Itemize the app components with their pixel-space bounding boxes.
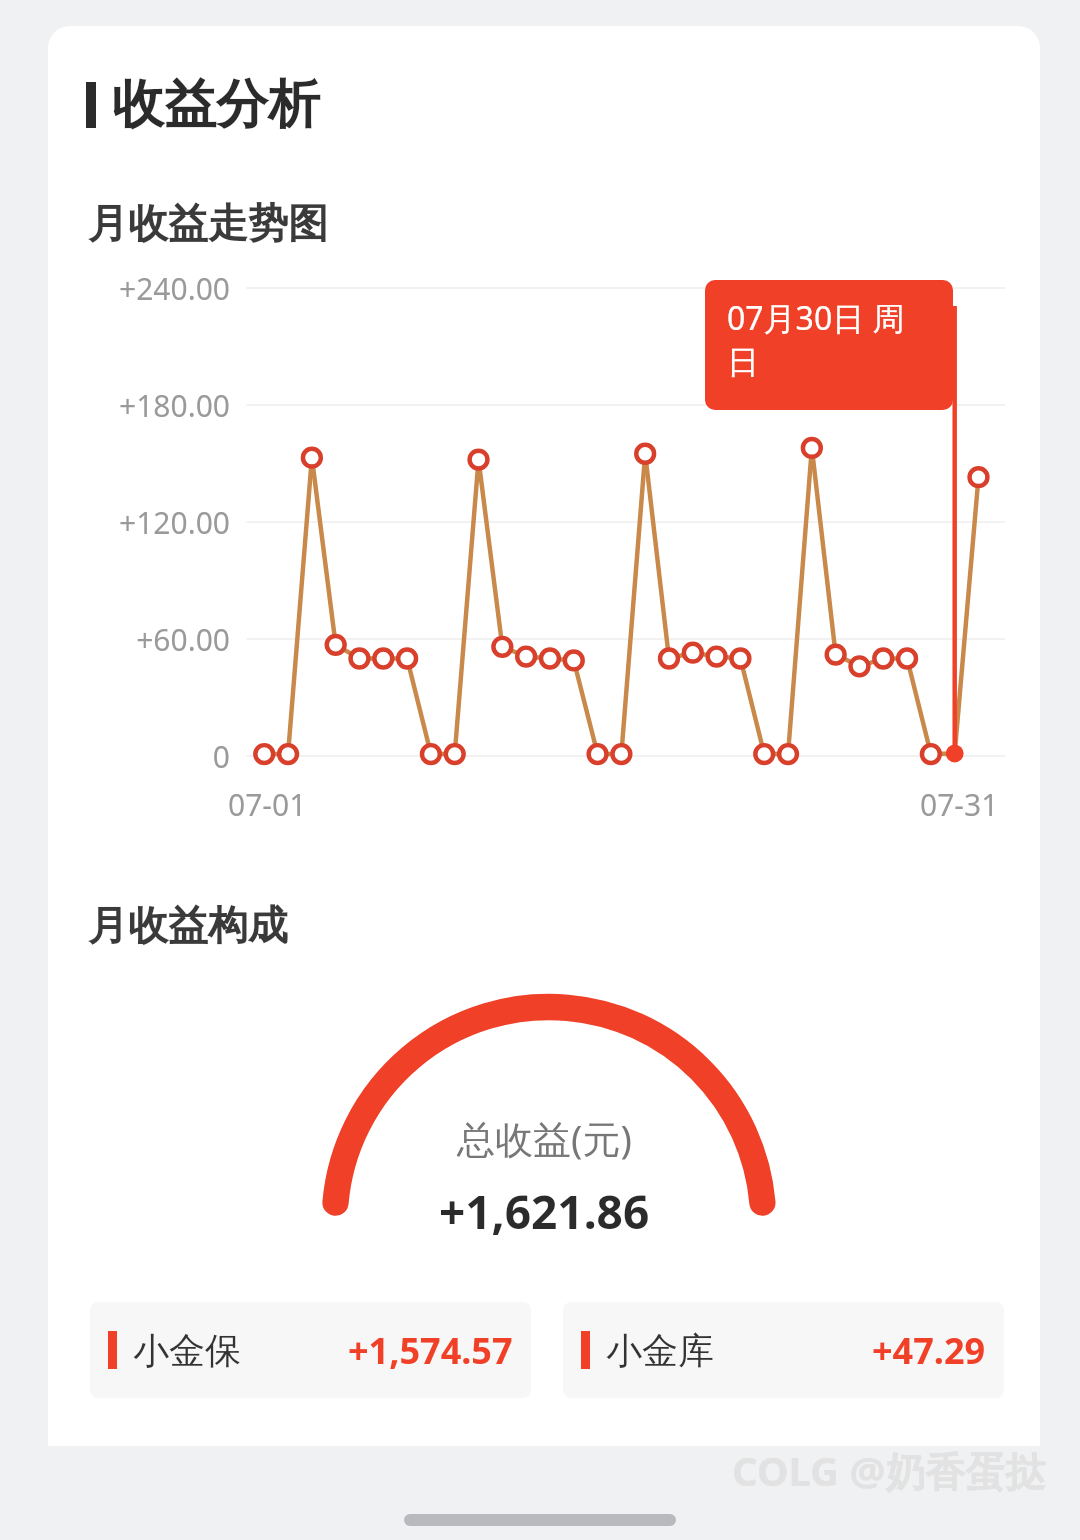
staticText: COLG @奶香蛋挞	[732, 1443, 1046, 1498]
button[interactable]: 小金库	[563, 1302, 1004, 1398]
staticText: 收益分析	[112, 72, 320, 138]
staticText: +1,621.86	[439, 1180, 650, 1243]
button[interactable]: 小金保	[90, 1302, 531, 1398]
staticText: 07-31	[920, 784, 999, 825]
staticText: 07-01	[228, 784, 307, 825]
button[interactable]: 收益分析	[86, 72, 1040, 138]
staticText: +180.00	[68, 385, 230, 426]
staticText: +120.00	[68, 502, 230, 543]
staticText: +1,574.57	[348, 1326, 513, 1375]
button[interactable]: 07月30日 周日	[705, 280, 953, 410]
staticText: +60.00	[68, 619, 230, 660]
staticText: 小金库	[606, 1328, 714, 1373]
staticText: 0	[68, 736, 230, 777]
staticText: 月收益构成	[88, 900, 288, 950]
other: Home indicator	[404, 1514, 676, 1526]
staticText: +47.29	[872, 1326, 986, 1375]
staticText: 月收益走势图	[88, 198, 328, 248]
staticText: 小金保	[133, 1328, 241, 1373]
staticText: 07月30日 周日	[727, 296, 931, 383]
staticText: +240.00	[68, 268, 230, 309]
staticText: 总收益(元)	[457, 1112, 632, 1164]
button[interactable]: +240.00	[48, 276, 1040, 856]
button[interactable]: 总收益(元)	[48, 980, 1040, 1280]
